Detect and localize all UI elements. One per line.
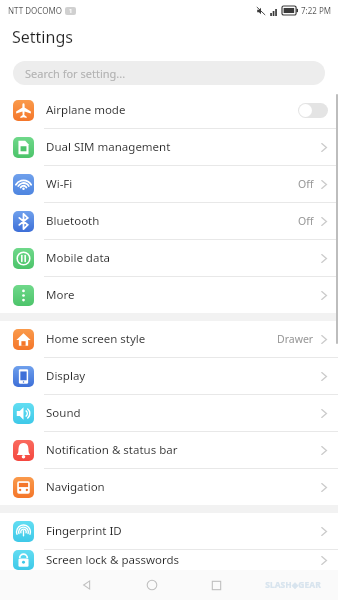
staticText: 7:22 PM xyxy=(301,5,332,16)
button[interactable]: Home screen style xyxy=(0,321,338,357)
staticText: Settings xyxy=(12,26,73,48)
staticText: Search for setting... xyxy=(25,66,126,81)
staticText: SLASH◆GEAR xyxy=(265,579,321,591)
button[interactable]: Dual SIM management xyxy=(0,129,338,165)
staticText: NTT DOCOMO xyxy=(8,5,62,16)
button[interactable]: Bluetooth xyxy=(0,203,338,239)
button[interactable]: More xyxy=(0,277,338,313)
staticText: Display xyxy=(46,368,320,384)
button[interactable]: Notification & status bar xyxy=(0,432,338,468)
staticText: Drawer xyxy=(277,332,314,346)
button[interactable]: Recent apps xyxy=(184,570,249,600)
staticText: 1 xyxy=(69,7,73,15)
button[interactable]: Fingerprint ID xyxy=(0,513,338,549)
button[interactable]: Search for setting... xyxy=(13,61,325,85)
staticText: More xyxy=(46,287,320,303)
staticText: Notification & status bar xyxy=(46,442,320,458)
button[interactable]: Home xyxy=(119,570,184,600)
button[interactable]: Wi-Fi xyxy=(0,166,338,202)
staticText: Navigation xyxy=(46,479,320,495)
staticText: Airplane mode xyxy=(46,102,298,118)
staticText: Off xyxy=(298,177,314,191)
button[interactable]: Airplane mode xyxy=(0,92,338,128)
button[interactable]: Navigation xyxy=(0,469,338,505)
staticText: Mobile data xyxy=(46,250,320,266)
button[interactable]: Airplane mode toggle xyxy=(298,103,328,118)
button[interactable]: Sound xyxy=(0,395,338,431)
staticText: Fingerprint ID xyxy=(46,523,320,539)
staticText: Dual SIM management xyxy=(46,139,320,155)
button[interactable]: Screen lock & passwords xyxy=(0,550,338,570)
staticText: Screen lock & passwords xyxy=(46,552,320,568)
staticText: Off xyxy=(298,214,314,228)
staticText: Wi-Fi xyxy=(46,176,298,192)
button[interactable]: Mobile data xyxy=(0,240,338,276)
staticText: Sound xyxy=(46,405,320,421)
staticText: Bluetooth xyxy=(46,213,298,229)
staticText: Home screen style xyxy=(46,331,277,347)
button[interactable]: Back xyxy=(54,570,119,600)
button[interactable]: Display xyxy=(0,358,338,394)
